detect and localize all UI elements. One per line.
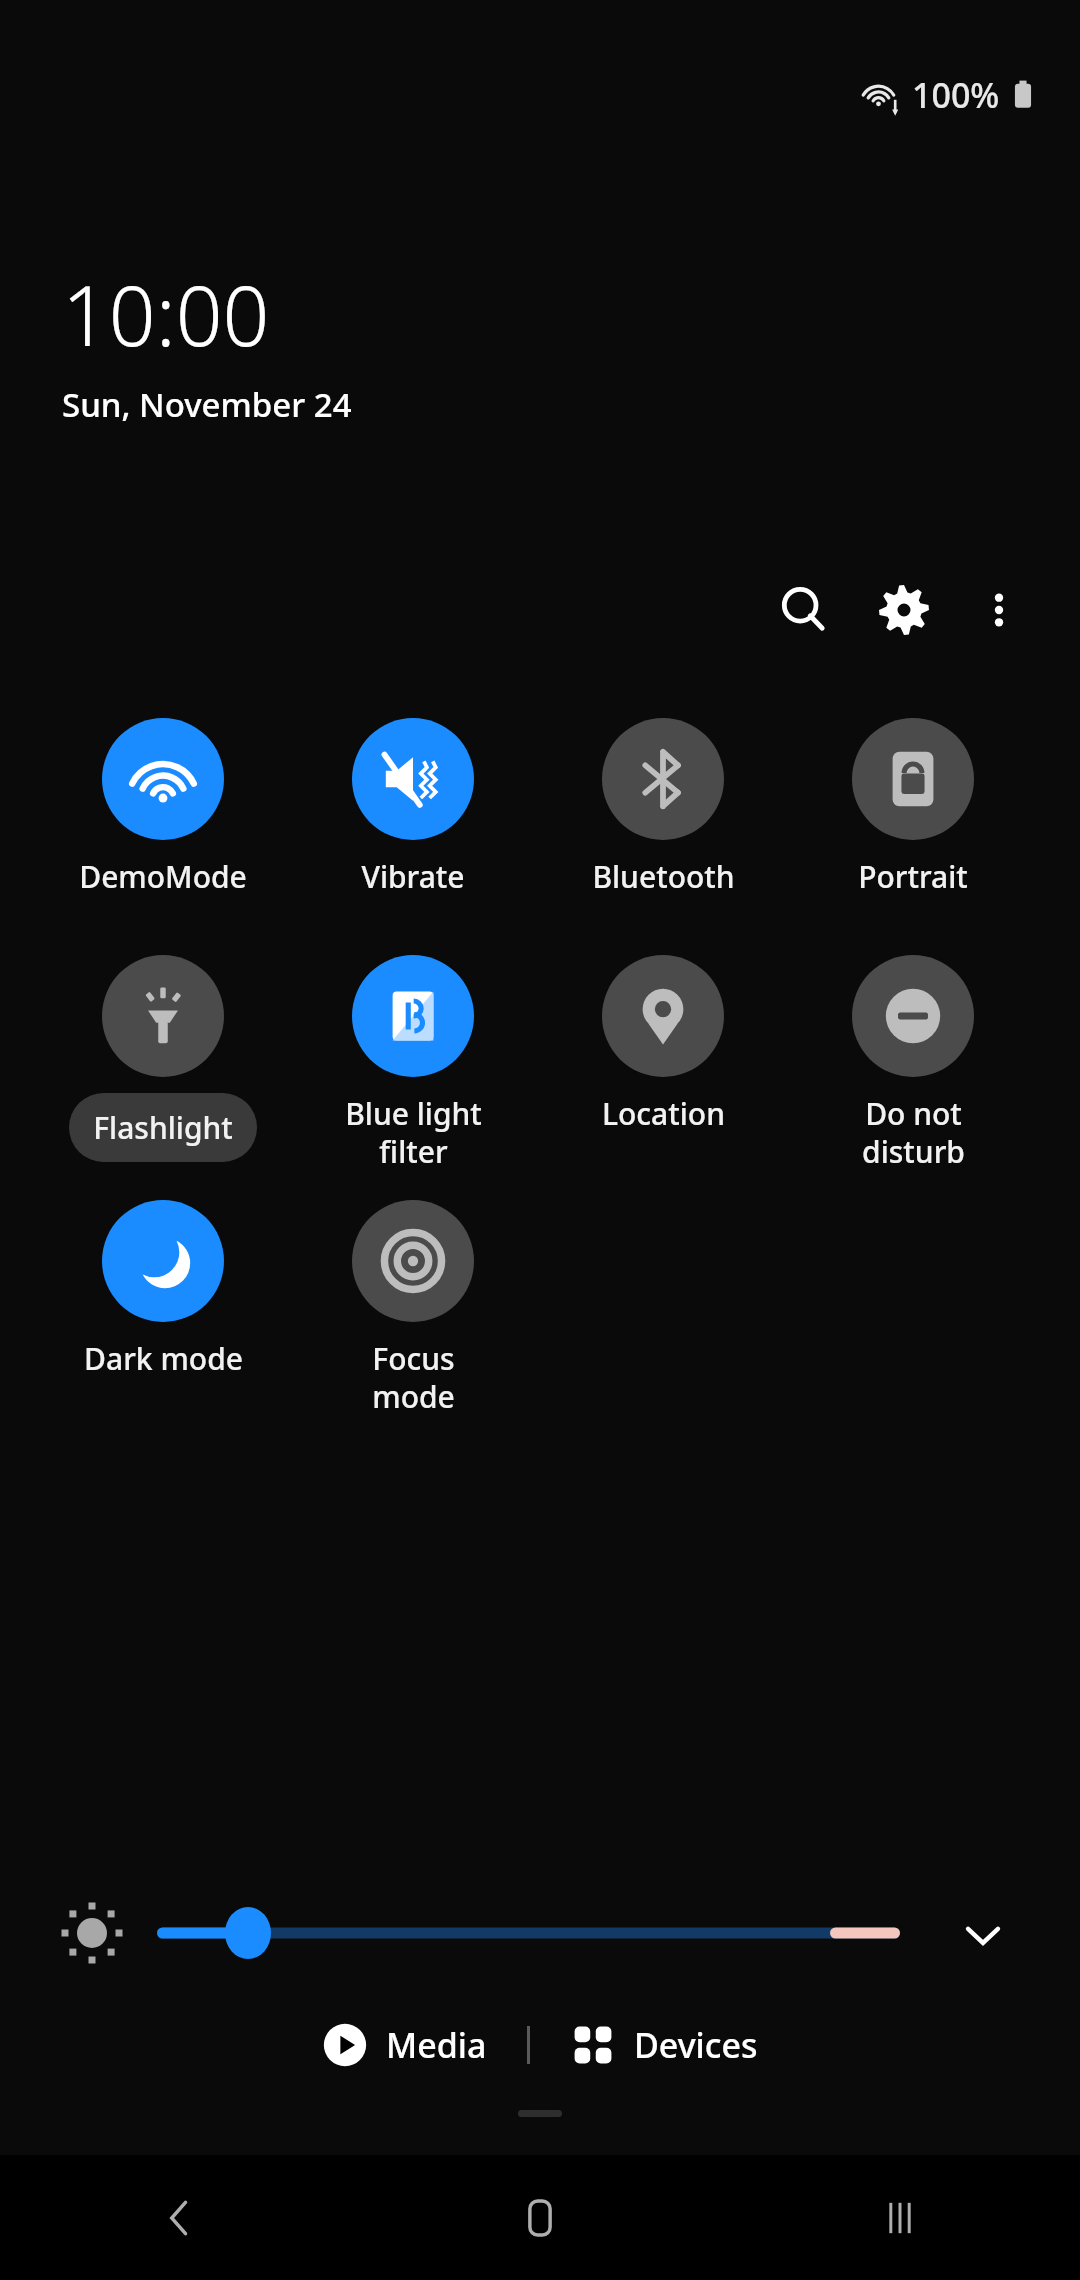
button[interactable]: Location [538, 955, 788, 1134]
button[interactable]: DemoMode [38, 718, 288, 897]
staticText: Bluetooth [592, 856, 735, 897]
button[interactable]: Vibrate [288, 718, 538, 897]
button[interactable]: Home [360, 2155, 720, 2280]
staticText: DemoMode [79, 856, 247, 897]
button[interactable]: Focus mode [288, 1200, 538, 1417]
staticText: Blue light filter [345, 1093, 482, 1172]
staticText: 10:00 [62, 258, 270, 370]
button[interactable]: Recent apps [720, 2155, 1080, 2280]
button[interactable]: Portrait [788, 718, 1038, 897]
staticText: Flashlight [93, 1107, 233, 1148]
staticText: Dark mode [84, 1338, 243, 1379]
button[interactable]: Settings [854, 560, 954, 660]
button[interactable]: Blue light filter [288, 955, 538, 1172]
staticText: Portrait [858, 856, 968, 897]
staticText: Devices [634, 2022, 758, 2068]
staticText: Do not disturb [862, 1093, 965, 1172]
button[interactable]: Media [312, 2010, 497, 2080]
button[interactable]: Do not disturb [788, 955, 1038, 1172]
button[interactable]: More options [954, 565, 1044, 655]
button[interactable]: Flashlight [38, 955, 288, 1162]
button[interactable]: Dark mode [38, 1200, 288, 1379]
staticText: Media [386, 2022, 487, 2068]
button[interactable]: Expand brightness settings [938, 1890, 1028, 1980]
button[interactable]: Devices [560, 2010, 768, 2080]
staticText: Focus mode [372, 1338, 455, 1417]
button[interactable]: Search [754, 560, 854, 660]
staticText: Sun, November 24 [62, 382, 352, 427]
button[interactable]: Bluetooth [538, 718, 788, 897]
button[interactable]: Back [0, 2155, 360, 2280]
staticText: 100% [912, 72, 1000, 118]
staticText: Vibrate [361, 856, 465, 897]
staticText: Location [602, 1093, 725, 1134]
